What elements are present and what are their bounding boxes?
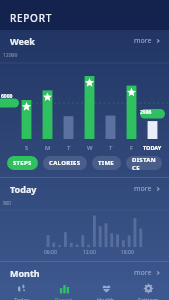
staticText: more: [134, 268, 152, 278]
staticText: 2986: [140, 109, 152, 116]
staticText: 6000: [1, 93, 13, 100]
button[interactable]: Report: [43, 283, 85, 300]
staticText: F: [130, 144, 134, 152]
staticText: 500: [3, 200, 11, 206]
staticText: 06:00: [44, 249, 57, 256]
staticText: TIME: [98, 159, 115, 167]
staticText: Settings: [138, 296, 159, 300]
staticText: Report: [55, 296, 73, 300]
button[interactable]: Settings: [127, 283, 169, 300]
staticText: Health: [97, 296, 115, 300]
button[interactable]: TIME: [92, 156, 121, 170]
staticText: CALORIES: [49, 159, 81, 167]
staticText: Week: [10, 35, 35, 47]
staticText: T: [109, 144, 113, 152]
staticText: W: [87, 144, 93, 152]
staticText: TODAY: [143, 144, 162, 151]
staticText: 12:00: [83, 249, 96, 256]
button[interactable]: Week: [0, 30, 169, 51]
staticText: more: [134, 36, 152, 46]
staticText: T: [67, 144, 71, 152]
staticText: STEPS: [13, 159, 32, 167]
staticText: Month: [10, 267, 40, 279]
button[interactable]: Today: [0, 283, 43, 300]
staticText: more: [134, 184, 152, 194]
staticText: M: [45, 144, 51, 152]
staticText: REPORT: [10, 11, 52, 25]
staticText: S: [25, 144, 29, 152]
button[interactable]: CALORIES: [43, 156, 87, 170]
button[interactable]: Health: [85, 283, 127, 300]
staticText: 12000: [3, 52, 18, 59]
button[interactable]: DISTANCE: [126, 156, 162, 170]
staticText: Today: [14, 296, 30, 300]
button[interactable]: Today: [0, 178, 169, 199]
button[interactable]: Month: [0, 262, 169, 283]
staticText: Today: [10, 183, 37, 195]
staticText: 18:00: [121, 249, 134, 256]
staticText: DISTANCE: [132, 156, 156, 170]
button[interactable]: STEPS: [7, 156, 38, 170]
